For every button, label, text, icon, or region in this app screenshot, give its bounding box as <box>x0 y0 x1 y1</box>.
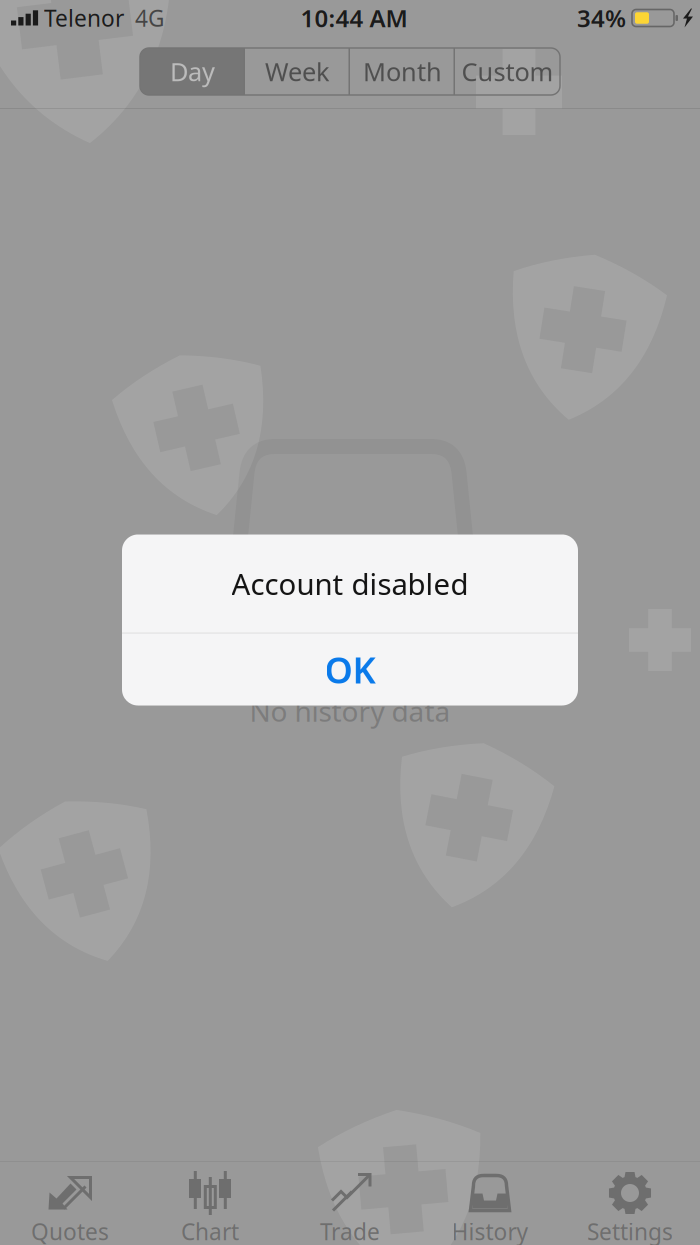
staticText: Settings <box>587 1216 673 1245</box>
staticText: Telenor <box>44 3 124 33</box>
staticText: History <box>451 1216 528 1245</box>
button[interactable]: Custom <box>455 48 560 95</box>
staticText: 10:44 AM <box>300 2 407 34</box>
staticText: No history data <box>249 692 450 730</box>
staticText: Custom <box>461 55 553 88</box>
button[interactable]: OK <box>122 633 578 705</box>
button[interactable]: History <box>420 1161 560 1245</box>
staticText: Account disabled <box>231 564 468 603</box>
button[interactable]: Month <box>350 48 455 95</box>
staticText: Quotes <box>31 1216 109 1245</box>
button[interactable]: Settings <box>560 1161 700 1245</box>
button[interactable]: Week <box>245 48 350 95</box>
staticText: Week <box>265 55 330 88</box>
button[interactable]: Quotes <box>0 1161 140 1245</box>
staticText: Month <box>363 55 442 88</box>
staticText: Trade <box>320 1216 380 1245</box>
staticText: Chart <box>181 1216 239 1245</box>
staticText: 34% <box>577 2 626 34</box>
button[interactable]: Trade <box>280 1161 420 1245</box>
staticText: OK <box>324 646 375 693</box>
staticText: 4G <box>135 3 165 33</box>
staticText: Day <box>170 55 215 88</box>
button[interactable]: Day <box>140 48 245 95</box>
button[interactable]: Chart <box>140 1161 280 1245</box>
